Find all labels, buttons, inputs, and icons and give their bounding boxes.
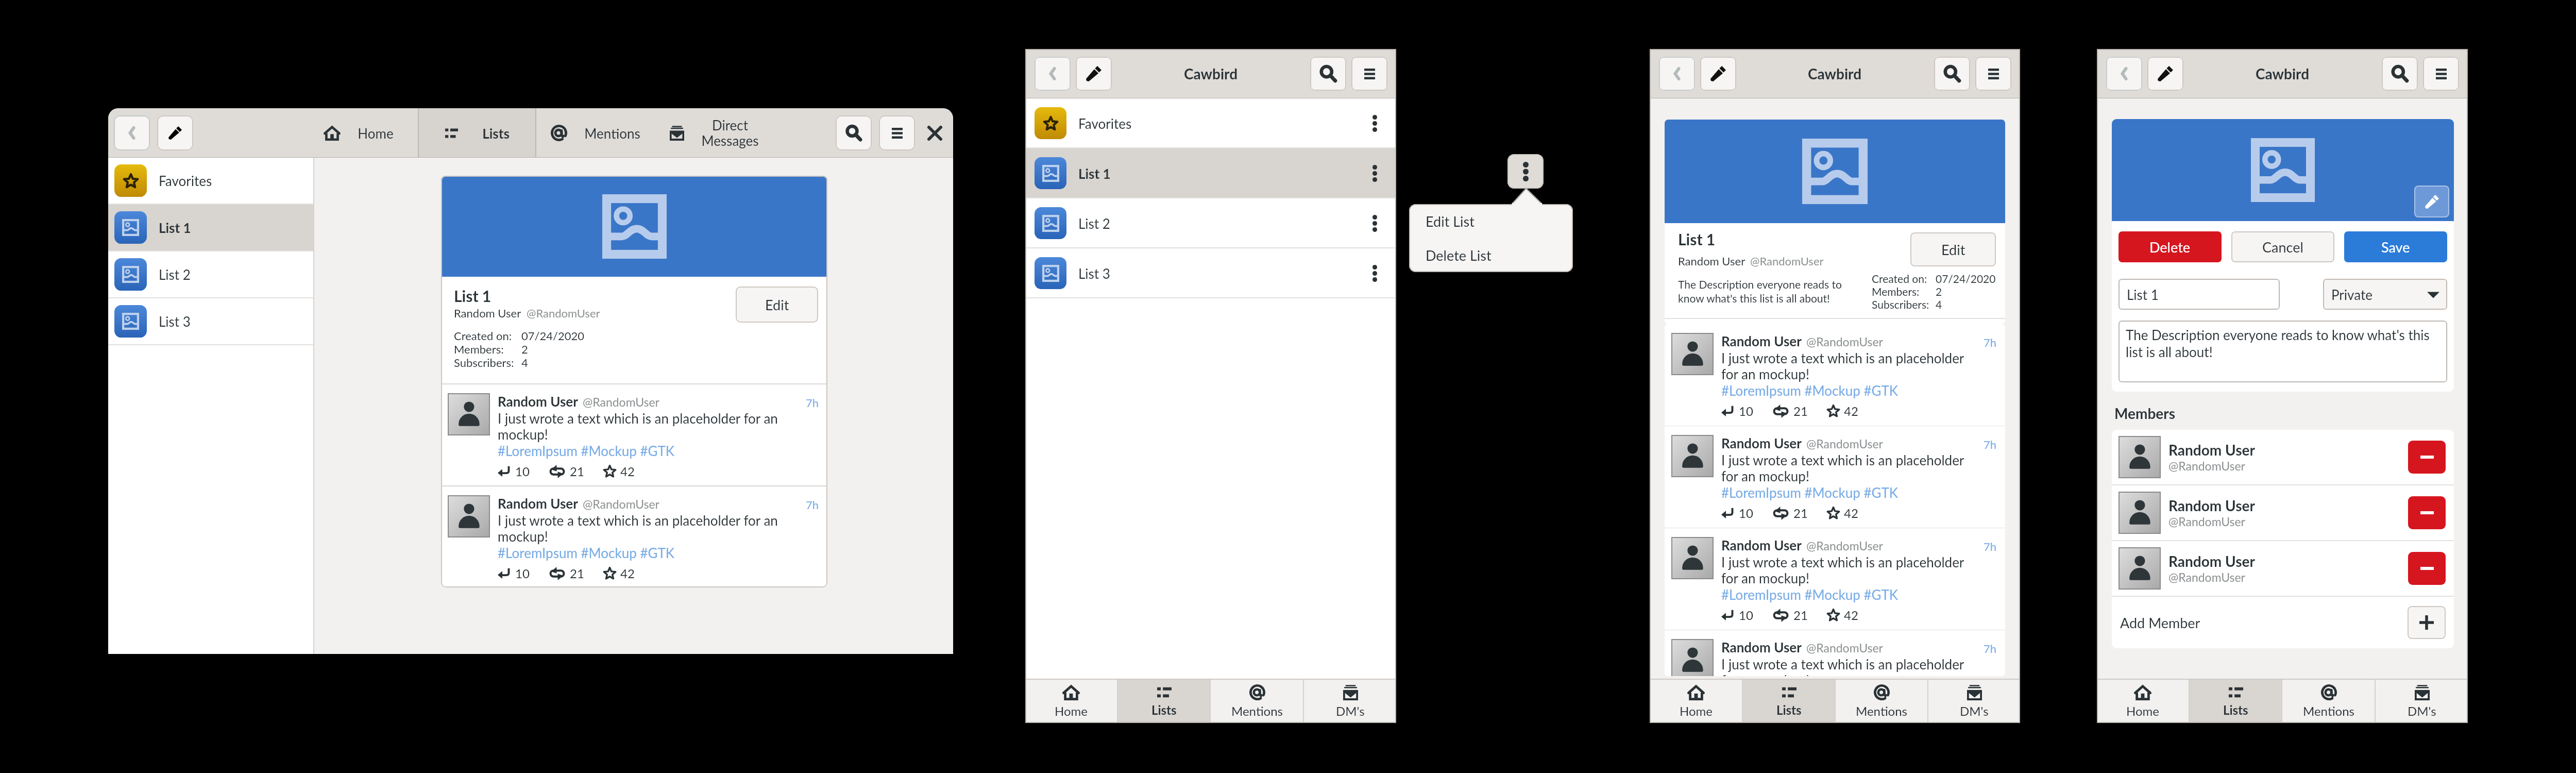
button[interactable]: List 1 [2119, 279, 2280, 310]
button[interactable]: Compose [2147, 57, 2183, 91]
staticText: Favorites [159, 173, 212, 189]
button[interactable]: Home [2097, 680, 2189, 723]
staticText: Members [2114, 405, 2175, 422]
staticText: Lists [1776, 702, 1802, 717]
staticText: Created on: [1872, 272, 1927, 285]
staticText: Random User [2168, 552, 2255, 570]
button[interactable]: Random User [2112, 485, 2454, 540]
button[interactable]: Random User [441, 384, 827, 485]
staticText: 21 [1793, 608, 1808, 623]
button[interactable]: More options [1364, 210, 1385, 236]
staticText: I just wrote a text which is an placehol… [1721, 554, 1964, 586]
button[interactable]: More options [1364, 260, 1385, 286]
button[interactable]: List 2 [1025, 198, 1396, 247]
button[interactable]: Add Member [2112, 597, 2454, 648]
button[interactable]: Random User [1665, 426, 2005, 527]
button[interactable]: Edit [1910, 232, 1996, 266]
button[interactable]: Menu [2423, 57, 2459, 91]
staticText: List 2 [1078, 215, 1110, 231]
button[interactable]: Home [1650, 680, 1742, 723]
staticText: Mentions [1231, 703, 1283, 718]
button[interactable]: Remove member [2408, 552, 2446, 585]
button[interactable]: Back [114, 115, 150, 150]
button[interactable]: Menu [1351, 57, 1387, 91]
staticText: Random User [1721, 639, 1802, 655]
button[interactable]: Cancel [2231, 231, 2334, 262]
button[interactable]: Private [2323, 279, 2447, 310]
button[interactable]: Compose [1700, 57, 1736, 91]
button[interactable]: List 1 [108, 205, 313, 250]
button[interactable]: The Description everyone reads to know w… [2119, 321, 2447, 382]
button[interactable]: Remove member [2408, 441, 2446, 474]
button[interactable]: Compose [1076, 57, 1112, 91]
button[interactable]: Save [2344, 231, 2447, 262]
button[interactable]: List 2 [108, 251, 313, 297]
button[interactable]: Search [836, 115, 872, 150]
button[interactable]: Back [1035, 57, 1071, 91]
button[interactable]: Compose [157, 115, 193, 150]
staticText: Lists [2223, 702, 2248, 717]
button[interactable]: Mentions [1836, 680, 1927, 723]
button[interactable]: Mentions [1211, 680, 1303, 723]
button[interactable]: Home [1025, 680, 1117, 723]
button[interactable]: Search [1934, 57, 1970, 91]
button[interactable]: Favorites [1025, 98, 1396, 147]
button[interactable]: DM's [1928, 680, 2020, 723]
staticText: Home [1680, 703, 1713, 718]
button[interactable]: Random User [1665, 528, 2005, 629]
button[interactable]: Favorites [108, 158, 313, 204]
staticText: 42 [1844, 404, 1858, 418]
button[interactable]: List 3 [108, 298, 313, 344]
staticText: 21 [1793, 506, 1808, 520]
staticText: Cancel [2262, 239, 2303, 255]
staticText: Delete [2149, 239, 2191, 255]
button[interactable]: Mentions [536, 108, 655, 158]
button[interactable]: Random User [1665, 324, 2005, 425]
button[interactable]: Edit banner [2414, 186, 2449, 217]
button[interactable]: DM's [1304, 680, 1396, 723]
button[interactable]: Edit [736, 287, 818, 323]
staticText: 7h [1984, 642, 1997, 655]
button[interactable]: Lists [2190, 680, 2281, 723]
button[interactable]: Home [299, 108, 418, 158]
button[interactable]: Random User [2112, 541, 2454, 596]
button[interactable]: Edit List [1426, 204, 1556, 238]
button[interactable]: Delete List [1426, 238, 1556, 272]
staticText: I just wrote a text which is an placehol… [498, 410, 778, 443]
button[interactable]: More options [1507, 154, 1544, 189]
button[interactable]: Add [2408, 606, 2446, 639]
button[interactable]: List 3 [1025, 248, 1396, 297]
button[interactable]: Search [2382, 57, 2418, 91]
button[interactable]: Menu [1975, 57, 2011, 91]
staticText: Home [1055, 703, 1088, 718]
button[interactable]: Direct Messages [655, 108, 773, 158]
button[interactable]: Random User [1665, 630, 2005, 676]
button[interactable]: Lists [1743, 680, 1835, 723]
button[interactable]: Random User [441, 486, 827, 587]
staticText: I just wrote a text which is an placehol… [1721, 452, 1964, 484]
staticText: 42 [1844, 506, 1858, 520]
staticText: @RandomUser [583, 395, 659, 409]
button[interactable]: Back [2106, 57, 2142, 91]
staticText: Delete List [1426, 247, 1492, 263]
button[interactable]: Lists [1118, 680, 1210, 723]
button[interactable]: Menu [879, 115, 915, 150]
staticText: Random User [2168, 497, 2255, 514]
button[interactable]: DM's [2376, 680, 2468, 723]
staticText: List 1 [159, 220, 191, 236]
button[interactable]: More options [1364, 110, 1385, 136]
staticText: Random User [498, 393, 578, 409]
staticText: 42 [620, 464, 635, 479]
staticText: @RandomUser [527, 306, 600, 320]
button[interactable]: Lists [418, 108, 536, 158]
button[interactable]: Mentions [2282, 680, 2375, 723]
button[interactable]: More options [1364, 160, 1385, 186]
staticText: Members: [454, 342, 504, 356]
button[interactable]: Random User [2112, 430, 2454, 484]
button[interactable]: Search [1310, 57, 1346, 91]
button[interactable]: List 1 [1025, 148, 1396, 197]
button[interactable]: Remove member [2408, 496, 2446, 529]
button[interactable]: Delete [2119, 231, 2222, 262]
button[interactable]: Close [923, 122, 946, 144]
button[interactable]: Back [1659, 57, 1695, 91]
